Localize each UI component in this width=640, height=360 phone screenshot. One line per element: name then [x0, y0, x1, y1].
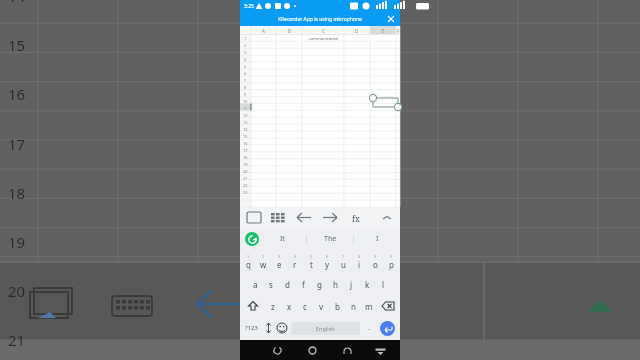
staticText: b — [335, 301, 340, 312]
button[interactable]: Home — [305, 343, 319, 357]
button[interactable]: 2 — [256, 250, 271, 273]
button[interactable]: n — [345, 295, 361, 317]
button[interactable]: Undo — [296, 210, 312, 226]
button[interactable]: Shift — [241, 295, 264, 317]
staticText: 21 — [8, 330, 26, 350]
button[interactable]: Back — [340, 343, 354, 357]
button[interactable]: 5 — [303, 250, 319, 273]
button[interactable]: ?123 — [241, 317, 262, 339]
button[interactable]: h — [327, 273, 343, 295]
button[interactable]: v — [313, 295, 329, 317]
staticText: w — [260, 259, 267, 270]
button[interactable]: Close — [386, 14, 396, 24]
button[interactable]: a — [248, 273, 263, 295]
button[interactable]: Recent — [270, 343, 284, 357]
button[interactable]: Grammarly — [245, 232, 259, 246]
staticText: XRecorder App is using microphone — [278, 16, 362, 23]
button[interactable]: 6 — [319, 250, 335, 273]
button[interactable]: fx — [348, 210, 364, 226]
staticText: 14 — [8, 0, 26, 6]
staticText: communication — [309, 36, 339, 41]
staticText: e — [277, 259, 282, 270]
staticText: z — [271, 301, 275, 312]
button[interactable]: 7 — [335, 250, 351, 273]
button[interactable]: Backspace — [377, 295, 399, 317]
button[interactable]: 8 — [351, 250, 367, 273]
staticText: 6 — [326, 254, 329, 259]
staticText: t — [310, 259, 313, 270]
button[interactable]: g — [311, 273, 327, 295]
button[interactable]: D — [344, 26, 370, 35]
staticText: r — [293, 259, 297, 270]
button[interactable]: Insert image — [270, 210, 286, 226]
staticText: c — [303, 301, 307, 312]
staticText: 13 — [243, 120, 248, 125]
button[interactable]: It — [259, 228, 306, 250]
button[interactable]: 0 — [383, 250, 399, 273]
staticText: 3 — [244, 50, 247, 55]
button[interactable]: k — [359, 273, 375, 295]
button[interactable]: l — [375, 273, 391, 295]
button[interactable]: d — [279, 273, 295, 295]
button[interactable]: c — [297, 295, 313, 317]
staticText: E — [382, 28, 385, 34]
staticText: 2 — [244, 43, 247, 48]
button[interactable]: f — [295, 273, 311, 295]
staticText: m — [365, 301, 373, 312]
staticText: 17 — [8, 134, 26, 154]
button[interactable]: Enter — [377, 319, 397, 337]
staticText: q — [246, 259, 251, 270]
button[interactable]: B — [276, 26, 302, 35]
staticText: 23 — [243, 190, 248, 195]
button[interactable]: Redo — [322, 210, 338, 226]
staticText: 2 — [262, 254, 265, 259]
staticText: d — [285, 279, 290, 290]
button[interactable]: Hide keyboard — [373, 343, 387, 357]
staticText: 9 — [374, 254, 377, 259]
staticText: p — [389, 259, 394, 270]
button[interactable]: Emoji — [275, 317, 289, 339]
staticText: 6 — [244, 71, 247, 76]
staticText: 4 — [294, 254, 297, 259]
button[interactable]: The — [307, 228, 353, 250]
button[interactable]: F — [396, 26, 400, 35]
staticText: 7 — [244, 78, 247, 83]
button[interactable]: I — [354, 228, 400, 250]
button[interactable]: . — [362, 317, 375, 339]
staticText: x — [287, 301, 292, 312]
button[interactable]: XRecorder App is using microphone — [240, 12, 400, 26]
button[interactable]: s — [263, 273, 279, 295]
button[interactable]: j — [343, 273, 359, 295]
button[interactable]: x — [281, 295, 297, 317]
button[interactable]: 3 — [271, 250, 287, 273]
staticText: 4 — [244, 57, 247, 62]
staticText: F — [397, 28, 400, 34]
staticText: j — [350, 279, 353, 290]
button[interactable]: English — [291, 322, 360, 335]
staticText: 0 — [390, 254, 393, 259]
button[interactable]: Expand — [379, 210, 395, 226]
button[interactable]: E — [370, 26, 396, 35]
button[interactable]: b — [329, 295, 345, 317]
button[interactable]: m — [361, 295, 377, 317]
button[interactable]: 4 — [287, 250, 303, 273]
button[interactable]: Switch language — [262, 317, 275, 339]
button[interactable]: Insert sheet — [246, 210, 262, 226]
button[interactable]: A — [251, 26, 276, 35]
staticText: y — [325, 259, 330, 270]
staticText: . — [368, 323, 370, 333]
staticText: 5 — [310, 254, 313, 259]
staticText: ?123 — [245, 324, 258, 332]
staticText: 15 — [8, 35, 26, 55]
button[interactable]: C — [302, 26, 344, 35]
button[interactable]: 9 — [367, 250, 383, 273]
staticText: 17 — [243, 148, 248, 153]
staticText: 18 — [8, 183, 26, 203]
staticText: fx — [352, 213, 360, 224]
staticText: l — [382, 279, 385, 290]
staticText: It — [280, 234, 285, 244]
button[interactable]: z — [264, 295, 281, 317]
staticText: D — [355, 28, 359, 34]
staticText: 1 — [244, 36, 247, 41]
button[interactable]: 1 — [241, 250, 256, 273]
